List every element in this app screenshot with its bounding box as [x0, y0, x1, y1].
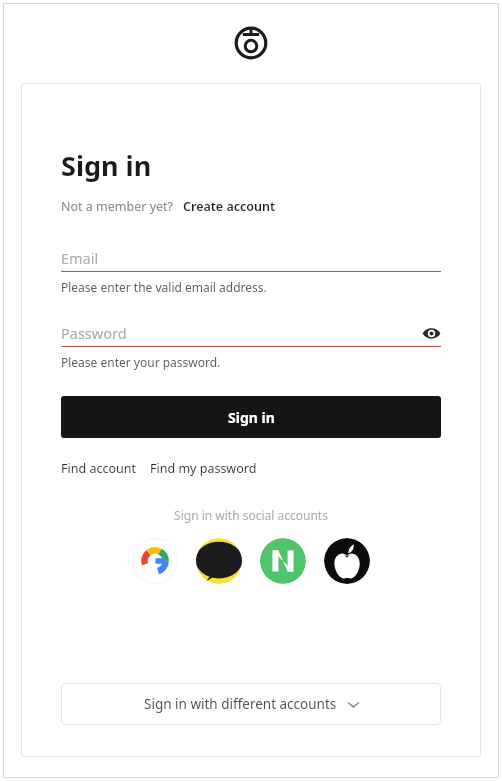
staticText: Create account: [183, 198, 276, 215]
staticText: Sign in with different accounts: [144, 695, 337, 713]
staticText: Not a member yet?: [61, 198, 174, 215]
button[interactable]: Sign in with Google: [132, 538, 178, 584]
button[interactable]: Sign in: [61, 396, 441, 438]
button[interactable]: Create account: [183, 198, 276, 215]
button[interactable]: Find account: [61, 460, 136, 477]
staticText: Please enter the valid email address.: [61, 279, 267, 295]
other: Show password: [422, 324, 441, 343]
staticText: Find my password: [150, 460, 257, 477]
staticText: Email: [61, 248, 441, 268]
staticText: Password: [61, 323, 422, 343]
button[interactable]: Sign in with different accounts: [61, 683, 441, 725]
staticText: Sign in with social accounts: [61, 507, 441, 523]
other: Logo: [234, 26, 268, 60]
button[interactable]: Sign in with Apple: [324, 538, 370, 584]
staticText: Find account: [61, 460, 136, 477]
staticText: Sign in: [61, 147, 152, 184]
button[interactable]: Password: [61, 320, 441, 347]
button[interactable]: Sign in with Naver: [260, 538, 306, 584]
button[interactable]: Sign in with Kakao: [196, 538, 242, 584]
staticText: Please enter your password.: [61, 354, 221, 370]
button[interactable]: Email: [61, 245, 441, 272]
staticText: Sign in: [228, 408, 275, 427]
button[interactable]: Find my password: [150, 460, 257, 477]
